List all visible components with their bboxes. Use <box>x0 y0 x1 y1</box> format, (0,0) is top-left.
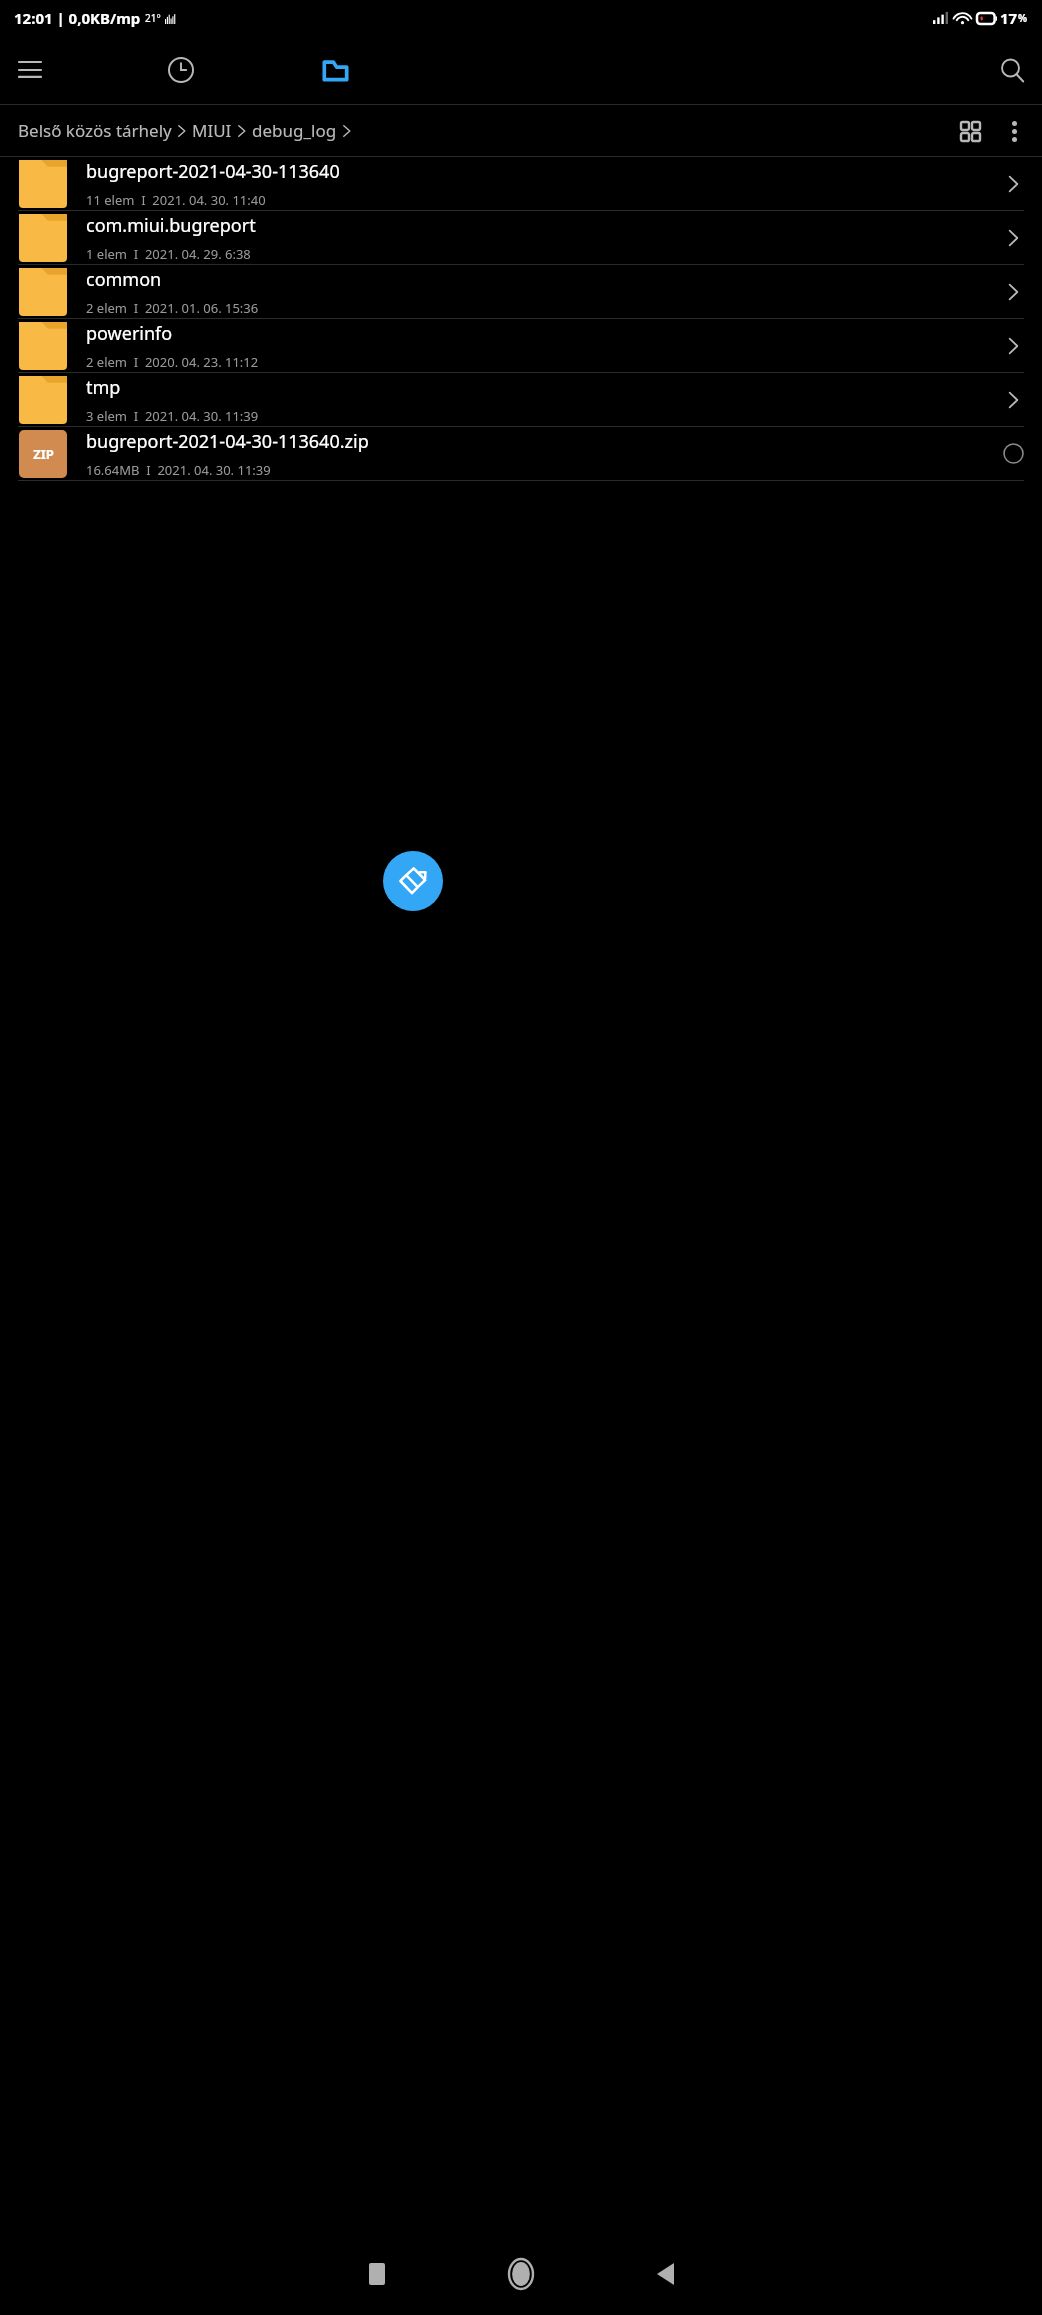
button[interactable]: Belső közös tárhely <box>18 119 357 142</box>
staticText: Belső közös tárhely <box>18 119 172 142</box>
staticText: powerinfo <box>86 321 173 346</box>
staticText: ZIP <box>33 445 54 463</box>
button[interactable]: Menu <box>6 46 54 94</box>
staticText: bugreport-2021-04-30-113640 <box>86 159 340 184</box>
button[interactable]: common <box>0 265 1042 318</box>
staticText: com.miui.bugreport <box>86 213 256 238</box>
staticText: 11 elem I 2021. 04. 30. 11:40 <box>86 191 266 209</box>
staticText: bugreport-2021-04-30-113640.zip <box>86 429 369 454</box>
staticText: 16.64MB I 2021. 04. 30. 11:39 <box>86 461 271 479</box>
staticText: 17 <box>1000 8 1018 28</box>
button[interactable]: powerinfo <box>0 319 1042 372</box>
button[interactable]: Files <box>311 36 359 104</box>
button[interactable]: More options <box>994 107 1034 155</box>
staticText: 12:01 | 0,0KB/mp <box>14 8 141 28</box>
button[interactable]: tmp <box>0 373 1042 426</box>
button[interactable]: Recent <box>157 36 205 104</box>
staticText: 1 elem I 2021. 04. 29. 6:38 <box>86 245 251 263</box>
staticText: debug_log <box>252 119 337 142</box>
button[interactable]: Grid view <box>946 107 994 155</box>
staticText: 21° <box>145 11 161 25</box>
button[interactable]: com.miui.bugreport <box>0 211 1042 264</box>
staticText: 2 elem I 2020. 04. 23. 11:12 <box>86 353 259 371</box>
staticText: 2 elem I 2021. 01. 06. 15:36 <box>86 299 259 317</box>
button[interactable]: Recents <box>345 2242 409 2306</box>
staticText: common <box>86 267 162 292</box>
button[interactable]: Back <box>633 2242 697 2306</box>
button[interactable]: Clean up storage <box>383 851 443 911</box>
button[interactable]: bugreport-2021-04-30-113640 <box>0 157 1042 210</box>
staticText: tmp <box>86 375 121 400</box>
staticText: MIUI <box>192 119 232 142</box>
button[interactable]: ZIP <box>0 427 1042 480</box>
staticText: % <box>1018 11 1028 25</box>
staticText: 3 elem I 2021. 04. 30. 11:39 <box>86 407 259 425</box>
button[interactable]: Search <box>988 46 1036 94</box>
button[interactable]: Home <box>489 2242 553 2306</box>
